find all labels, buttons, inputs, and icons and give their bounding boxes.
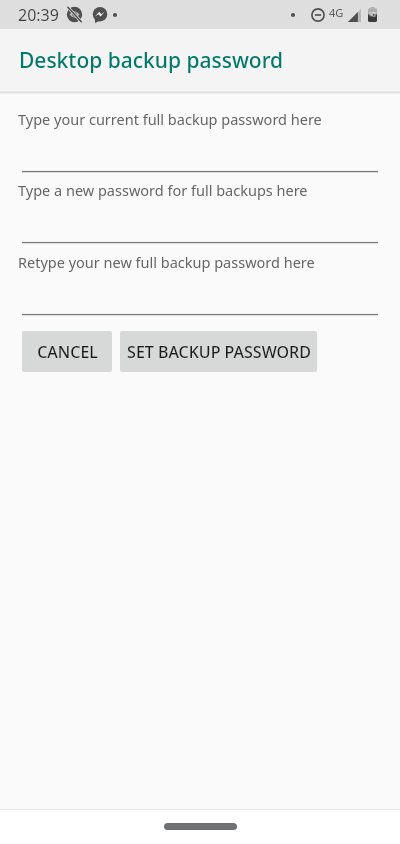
- button[interactable]: Type a new password for full backups her…: [18, 172, 378, 243]
- button[interactable]: Retype your new full backup password her…: [18, 244, 378, 315]
- staticText: Retype your new full backup password her…: [18, 252, 315, 272]
- button[interactable]: Type your current full backup password h…: [18, 101, 378, 172]
- staticText: Type a new password for full backups her…: [18, 180, 308, 200]
- staticText: Desktop backup password: [19, 46, 284, 75]
- staticText: 20:39: [18, 4, 59, 26]
- staticText: CANCEL: [37, 341, 98, 363]
- button[interactable]: CANCEL: [22, 331, 112, 372]
- button[interactable]: SET BACKUP PASSWORD: [120, 331, 317, 372]
- other: Mobile signal: [348, 9, 361, 22]
- staticText: SET BACKUP PASSWORD: [127, 341, 311, 363]
- staticText: 4G: [329, 5, 344, 20]
- staticText: Type your current full backup password h…: [18, 109, 322, 129]
- other: Battery 50 percent: [368, 7, 377, 22]
